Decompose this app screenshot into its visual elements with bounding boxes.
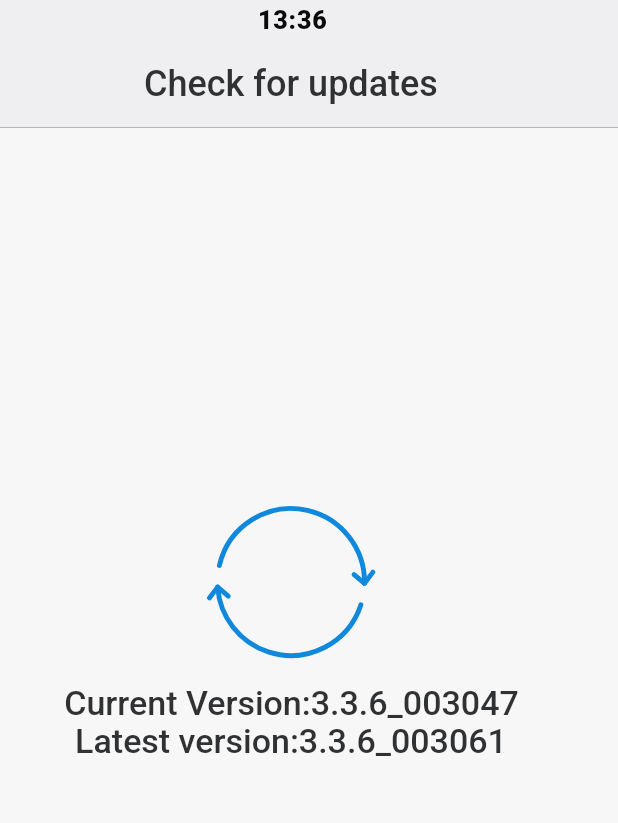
staticText: Check for updates <box>144 63 438 105</box>
staticText: Current Version:3.3.6_003047 <box>64 683 519 723</box>
staticText: 13:36 <box>258 6 328 35</box>
staticText: Latest version:3.3.6_003061 <box>75 721 507 761</box>
button[interactable]: Check for updates <box>211 502 371 662</box>
